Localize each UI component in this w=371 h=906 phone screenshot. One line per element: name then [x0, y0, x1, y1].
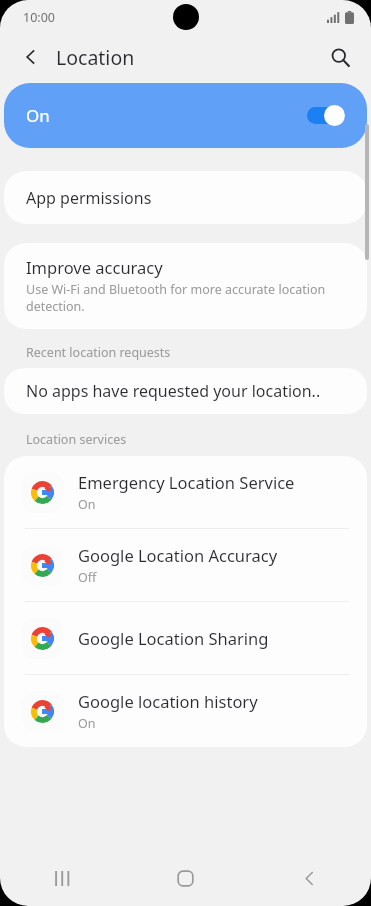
staticText: On — [78, 715, 96, 732]
staticText: On — [78, 496, 96, 513]
staticText: Off — [78, 569, 97, 586]
staticText: No apps have requested your location.. — [26, 380, 321, 402]
button[interactable]: Google Location Accuracy — [4, 529, 367, 601]
staticText: Improve accuracy — [26, 256, 163, 278]
button[interactable]: Back — [247, 851, 371, 906]
button[interactable]: Google location history — [4, 675, 367, 747]
staticText: 10:00 — [23, 9, 55, 26]
staticText: On — [26, 104, 50, 127]
button[interactable]: Improve accuracy — [4, 243, 367, 329]
staticText: Google Location Sharing — [78, 627, 269, 649]
staticText: Google Location Accuracy — [78, 544, 278, 566]
button[interactable]: Back — [14, 40, 48, 74]
button[interactable]: Recents — [0, 851, 123, 906]
staticText: Emergency Location Service — [78, 471, 295, 493]
button[interactable]: Search — [321, 38, 359, 76]
button[interactable]: No apps have requested your location.. — [4, 368, 367, 414]
button[interactable]: App permissions — [4, 171, 367, 224]
button[interactable]: On — [4, 83, 367, 148]
staticText: Location services — [26, 431, 127, 448]
staticText: App permissions — [26, 187, 152, 209]
button[interactable]: Google Location Sharing — [4, 602, 367, 674]
staticText: Google location history — [78, 690, 258, 712]
staticText: Recent location requests — [26, 344, 171, 361]
button[interactable]: Emergency Location Service — [4, 456, 367, 528]
staticText: Location — [56, 44, 135, 71]
button[interactable]: Home — [123, 851, 247, 906]
staticText: Use Wi-Fi and Bluetooth for more accurat… — [26, 281, 341, 314]
